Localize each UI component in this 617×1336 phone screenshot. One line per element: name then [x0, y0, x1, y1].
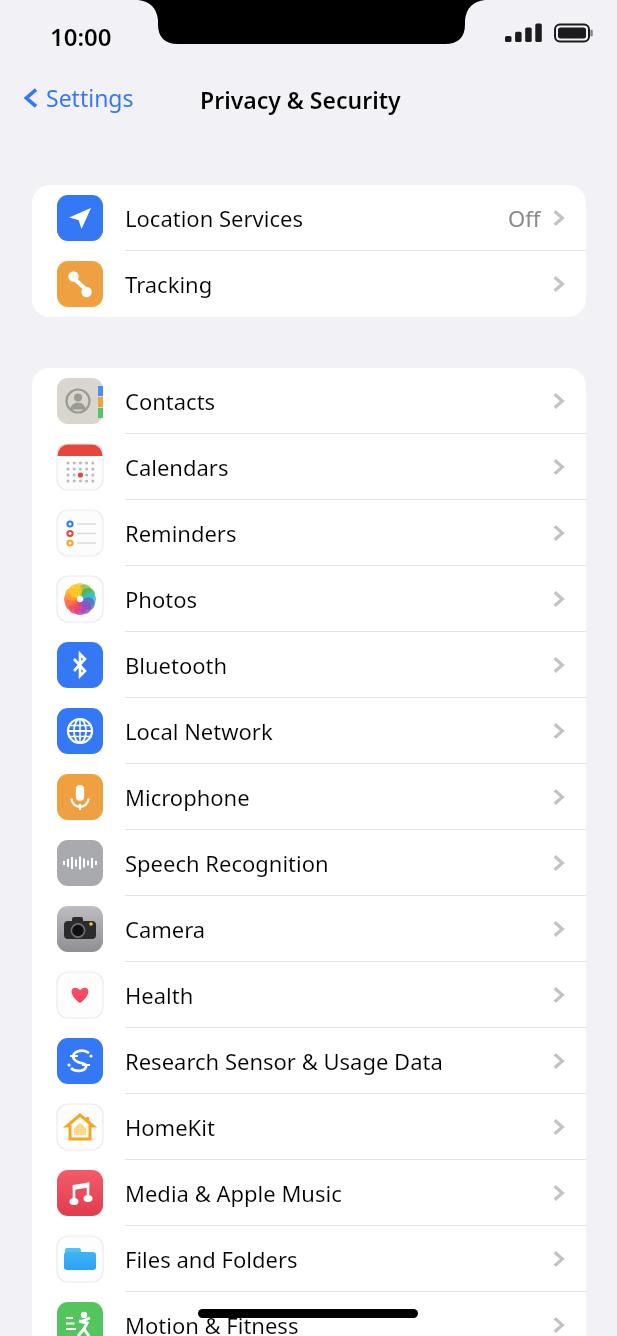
- staticText: Calendars: [125, 452, 229, 482]
- staticText: Tracking: [125, 269, 213, 299]
- button[interactable]: Local Network: [32, 698, 586, 764]
- staticText: Bluetooth: [125, 650, 228, 680]
- staticText: Off: [508, 203, 541, 233]
- staticText: Contacts: [125, 386, 216, 416]
- staticText: Media & Apple Music: [125, 1178, 342, 1208]
- button[interactable]: Reminders: [32, 500, 586, 566]
- staticText: Reminders: [125, 518, 237, 548]
- button[interactable]: Photos: [32, 566, 586, 632]
- button[interactable]: Research Sensor & Usage Data: [32, 1028, 586, 1094]
- staticText: Location Services: [125, 203, 303, 233]
- button[interactable]: Camera: [32, 896, 586, 962]
- button[interactable]: HomeKit: [32, 1094, 586, 1160]
- staticText: Camera: [125, 914, 206, 944]
- staticText: Microphone: [125, 782, 250, 812]
- staticText: Health: [125, 980, 194, 1010]
- button[interactable]: Tracking: [32, 251, 586, 317]
- button[interactable]: Settings: [16, 78, 140, 117]
- staticText: Settings: [46, 82, 134, 113]
- staticText: HomeKit: [125, 1112, 215, 1142]
- staticText: Files and Folders: [125, 1244, 298, 1274]
- button[interactable]: Bluetooth: [32, 632, 586, 698]
- staticText: 10:00: [50, 20, 112, 53]
- staticText: Photos: [125, 584, 198, 614]
- staticText: Local Network: [125, 716, 273, 746]
- button[interactable]: Health: [32, 962, 586, 1028]
- staticText: Speech Recognition: [125, 848, 329, 878]
- button[interactable]: Motion & Fitness: [32, 1292, 586, 1336]
- button[interactable]: Location Services: [32, 185, 586, 251]
- button[interactable]: Contacts: [32, 368, 586, 434]
- staticText: Motion & Fitness: [125, 1310, 299, 1336]
- button[interactable]: Speech Recognition: [32, 830, 586, 896]
- button[interactable]: Calendars: [32, 434, 586, 500]
- button[interactable]: Files and Folders: [32, 1226, 586, 1292]
- staticText: Privacy & Security: [200, 84, 401, 115]
- staticText: Research Sensor & Usage Data: [125, 1046, 443, 1076]
- button[interactable]: Microphone: [32, 764, 586, 830]
- button[interactable]: Media & Apple Music: [32, 1160, 586, 1226]
